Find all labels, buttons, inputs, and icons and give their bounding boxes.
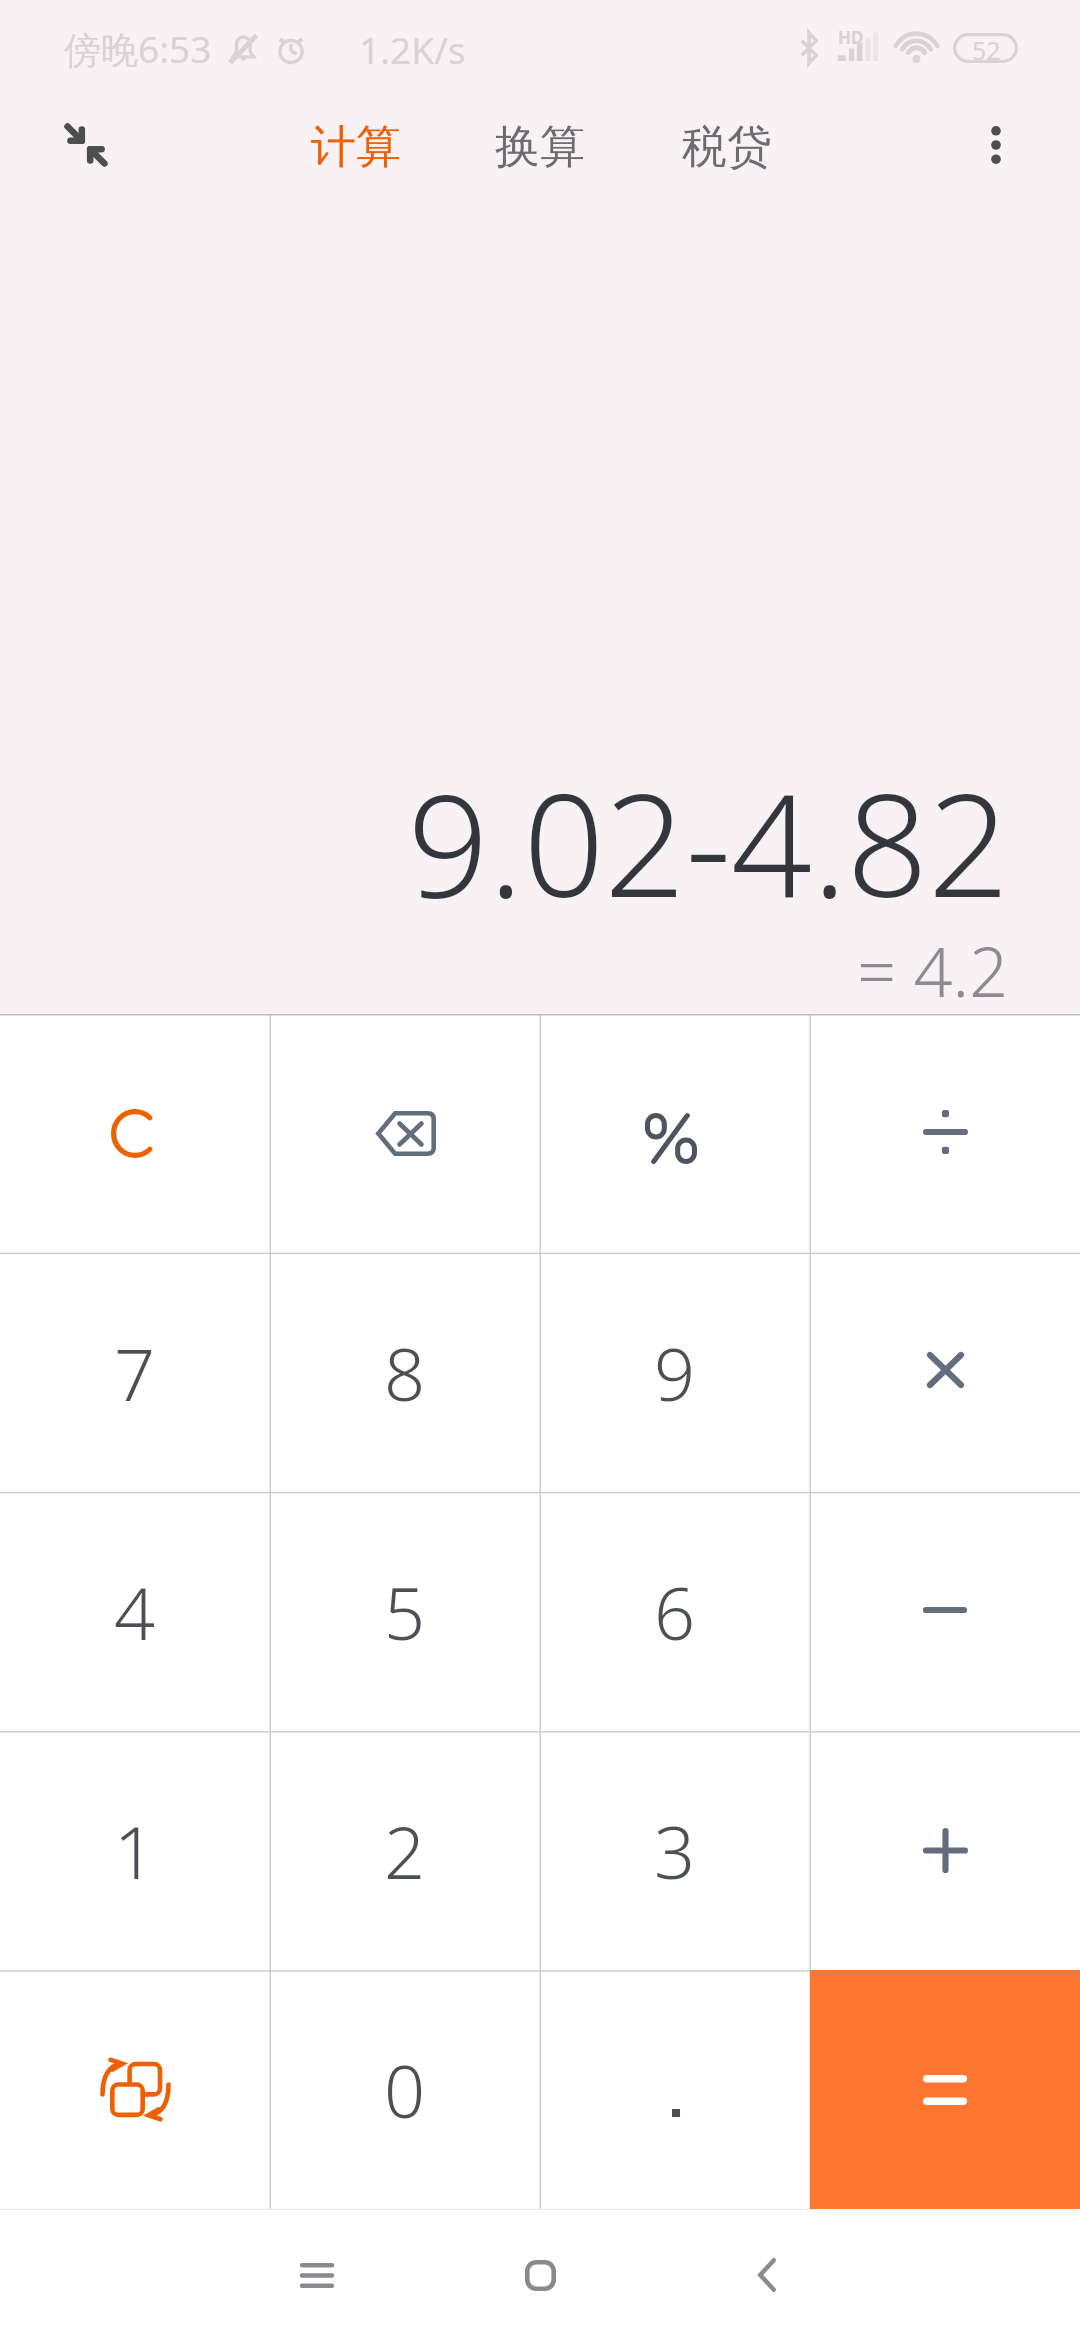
staticText: 计算: [311, 119, 401, 176]
button[interactable]: 0: [270, 1970, 540, 2209]
staticText: 8: [384, 1324, 426, 1422]
staticText: 9: [654, 1324, 696, 1422]
button[interactable]: Convert: [0, 1970, 270, 2209]
button[interactable]: 税贷: [657, 95, 797, 195]
staticText: 0: [384, 2041, 426, 2139]
button[interactable]: Decimal point: [540, 1970, 810, 2209]
button[interactable]: 1: [0, 1731, 270, 1970]
staticText: HD: [838, 26, 864, 49]
button[interactable]: 8: [270, 1253, 540, 1492]
button[interactable]: 换算: [470, 95, 610, 195]
button[interactable]: 4: [0, 1492, 270, 1731]
staticText: 4: [114, 1563, 156, 1661]
button[interactable]: Backspace: [270, 1014, 540, 1253]
staticText: 税贷: [682, 119, 772, 176]
staticText: 9.02-4.82: [407, 745, 1009, 938]
button[interactable]: 3: [540, 1731, 810, 1970]
button[interactable]: Minus: [810, 1492, 1080, 1731]
button[interactable]: Percent: [540, 1014, 810, 1253]
button[interactable]: More options: [946, 95, 1046, 195]
staticText: = 4.2: [857, 924, 1008, 1017]
button[interactable]: Home: [485, 2220, 595, 2330]
button[interactable]: Equals: [810, 1970, 1080, 2209]
button[interactable]: Back: [712, 2220, 822, 2330]
button[interactable]: Recents: [262, 2220, 372, 2330]
button[interactable]: 5: [270, 1492, 540, 1731]
button[interactable]: Plus: [810, 1731, 1080, 1970]
staticText: 1.2K/s: [359, 24, 466, 74]
staticText: 5: [384, 1563, 426, 1661]
button[interactable]: 9: [540, 1253, 810, 1492]
staticText: 52: [972, 33, 1001, 63]
button[interactable]: Clear: [0, 1014, 270, 1253]
button[interactable]: 6: [540, 1492, 810, 1731]
staticText: 6: [654, 1563, 696, 1661]
button[interactable]: Collapse: [36, 95, 136, 195]
staticText: 1: [114, 1802, 156, 1900]
staticText: 3: [654, 1802, 696, 1900]
staticText: 傍晚6:53: [64, 23, 212, 74]
button[interactable]: Multiply: [810, 1253, 1080, 1492]
staticText: 换算: [495, 119, 585, 176]
button[interactable]: 计算: [286, 95, 426, 195]
button[interactable]: Divide: [810, 1014, 1080, 1253]
button[interactable]: 7: [0, 1253, 270, 1492]
button[interactable]: 2: [270, 1731, 540, 1970]
staticText: 2: [384, 1802, 426, 1900]
staticText: 7: [114, 1324, 156, 1422]
